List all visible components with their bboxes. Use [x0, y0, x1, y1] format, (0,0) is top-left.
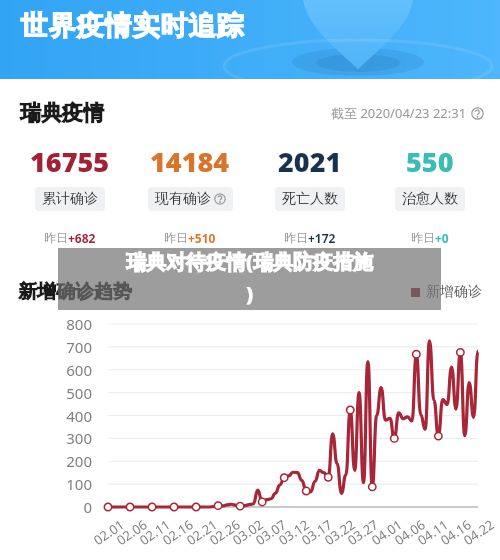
staticText: 300 [0, 428, 92, 448]
staticText: 04.11 [414, 515, 452, 549]
staticText: 03.22 [321, 515, 359, 549]
staticText: 400 [0, 406, 92, 426]
staticText: 2021 [278, 143, 342, 180]
button[interactable]: 14184 [130, 143, 250, 211]
staticText: +0 [435, 230, 449, 246]
button[interactable]: 2021 [250, 143, 370, 211]
staticText: 新增确诊 [426, 283, 482, 301]
button[interactable]: 新增确诊 [411, 283, 482, 301]
staticText: 500 [0, 383, 92, 403]
staticText: 700 [0, 337, 92, 357]
staticText: 死亡人数 [282, 190, 338, 208]
staticText: 03.07 [252, 515, 290, 549]
staticText: 0 [0, 497, 92, 517]
staticText: 04.01 [368, 515, 406, 549]
button[interactable]: 16755 [10, 143, 130, 211]
staticText: 02.01 [90, 515, 128, 549]
staticText: 02.06 [113, 515, 151, 549]
staticText: 16755 [30, 143, 110, 180]
staticText: 瑞典疫情 [20, 100, 104, 126]
staticText: 昨日 [411, 230, 435, 245]
staticText: +172 [308, 230, 336, 246]
staticText: 03.17 [298, 515, 336, 549]
staticText: 03.12 [275, 515, 313, 549]
staticText: 昨日 [164, 230, 188, 245]
staticText: +682 [68, 230, 96, 246]
staticText: 02.16 [159, 515, 197, 549]
staticText: 瑞典对待疫情(瑞典防疫措施 ) [58, 248, 441, 307]
staticText: 14184 [150, 143, 230, 180]
staticText: 04.16 [437, 515, 475, 549]
button[interactable]: 550 [370, 143, 490, 211]
staticText: 800 [0, 314, 92, 334]
button[interactable]: 数据说明 [331, 104, 484, 122]
staticText: 03.02 [229, 515, 267, 549]
staticText: 累计确诊 [42, 190, 98, 208]
staticText: 02.21 [183, 515, 221, 549]
staticText: 04.22 [460, 515, 498, 549]
staticText: +510 [188, 230, 216, 246]
staticText: 02.26 [206, 515, 244, 549]
staticText: 04.06 [391, 515, 429, 549]
staticText: 昨日 [44, 230, 68, 245]
staticText: 现有确诊 [155, 190, 211, 208]
staticText: 治愈人数 [402, 190, 458, 208]
staticText: 昨日 [284, 230, 308, 245]
staticText: 截至 2020/04/23 22:31 [331, 104, 467, 122]
staticText: 600 [0, 360, 92, 380]
staticText: 新增确诊趋势 [18, 280, 132, 304]
staticText: 200 [0, 451, 92, 471]
staticText: 03.27 [344, 515, 382, 549]
staticText: 02.11 [136, 515, 174, 549]
staticText: 世界疫情实时追踪 [20, 9, 244, 43]
staticText: 100 [0, 474, 92, 494]
staticText: 550 [406, 143, 454, 180]
